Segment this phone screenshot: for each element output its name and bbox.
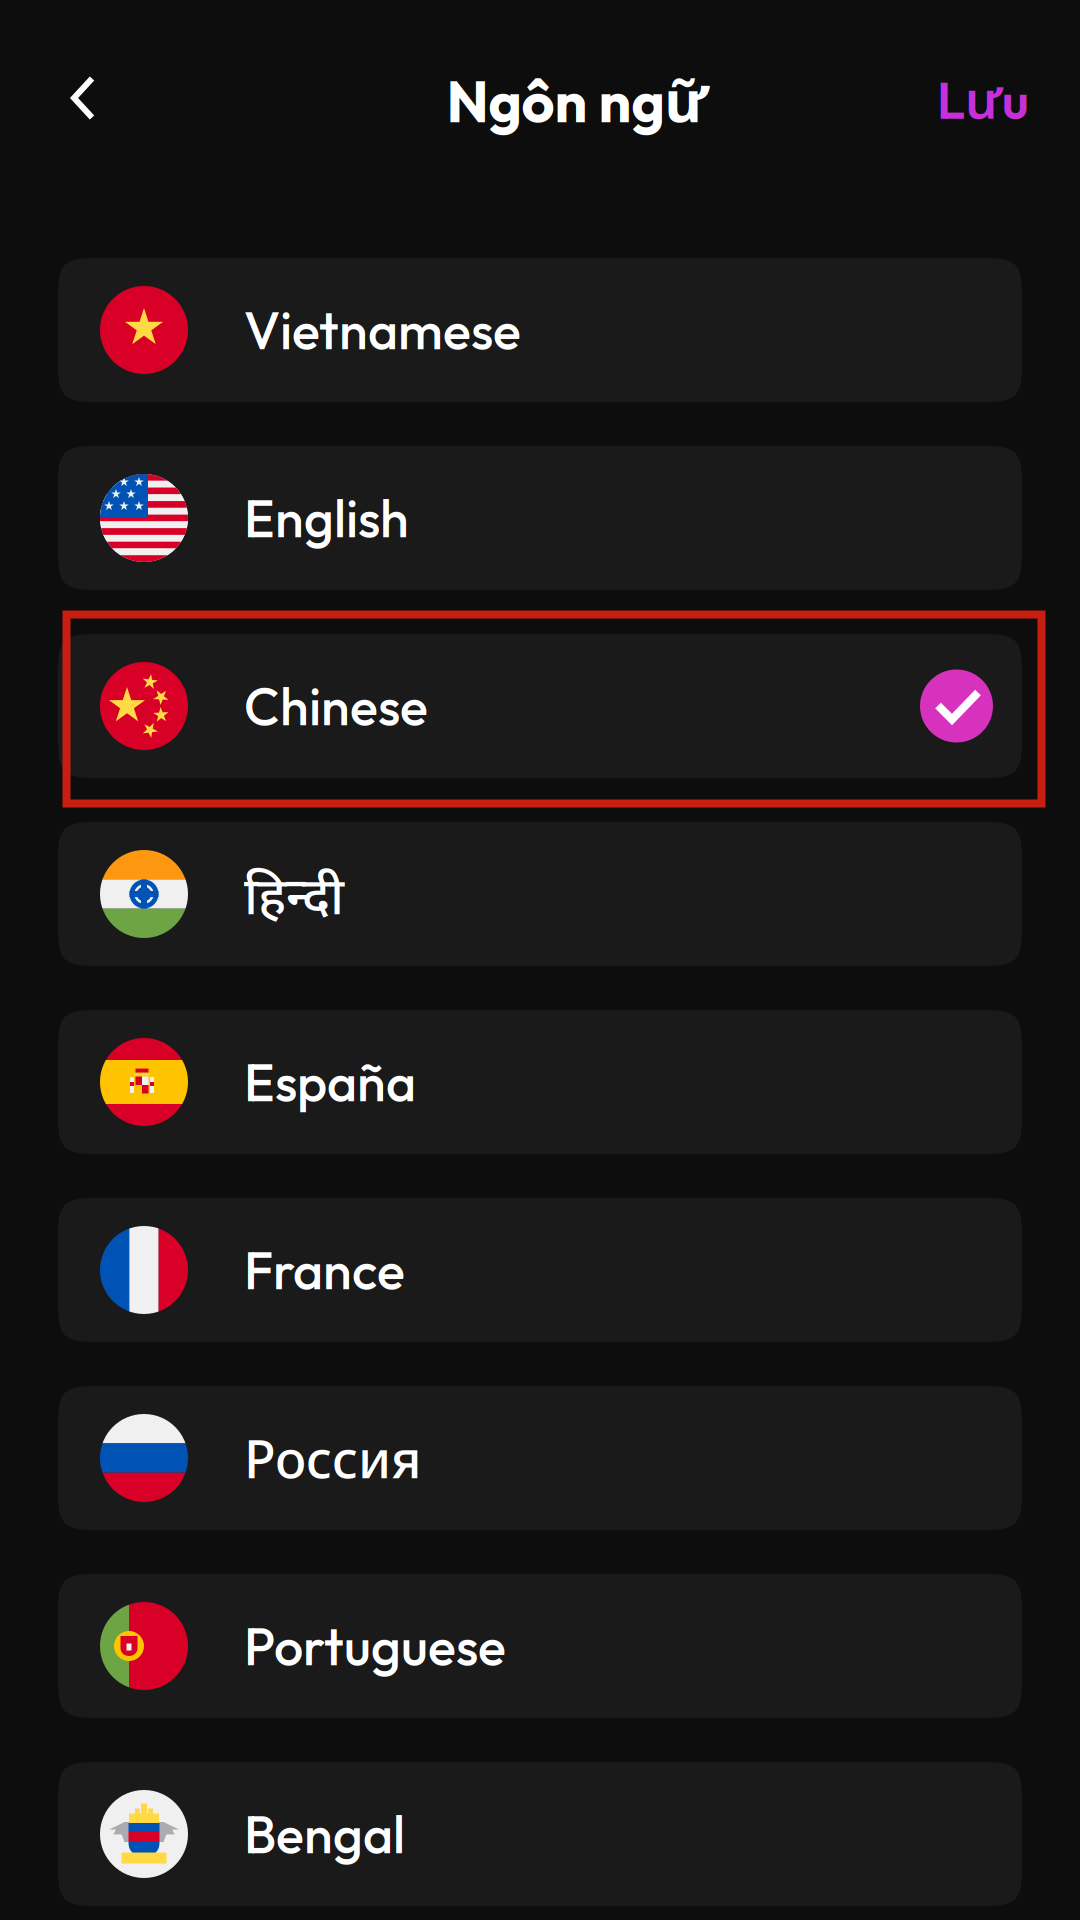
staticText: Lưu (937, 64, 1029, 133)
staticText: Ngôn ngữ (446, 61, 707, 139)
staticText: Chinese (244, 673, 428, 739)
button[interactable]: France (58, 1198, 1022, 1342)
button[interactable]: España (58, 1010, 1022, 1154)
button[interactable]: Россия (58, 1386, 1022, 1530)
button[interactable]: Bengal (58, 1762, 1022, 1906)
button[interactable]: Back (0, 31, 162, 161)
staticText: English (244, 485, 409, 551)
button[interactable]: हिन्दी (58, 822, 1022, 966)
staticText: Portuguese (244, 1613, 506, 1679)
staticText: Bengal (244, 1801, 405, 1867)
staticText: Vietnamese (244, 297, 521, 363)
staticText: France (244, 1237, 405, 1303)
staticText: España (244, 1049, 416, 1115)
button[interactable]: Portuguese (58, 1574, 1022, 1718)
button[interactable]: Vietnamese (58, 258, 1022, 402)
button[interactable]: English (58, 446, 1022, 590)
button[interactable]: Chinese (58, 634, 1022, 778)
button[interactable]: Lưu (942, 31, 1080, 161)
staticText: हिन्दी (244, 859, 344, 929)
staticText: Россия (244, 1423, 421, 1493)
